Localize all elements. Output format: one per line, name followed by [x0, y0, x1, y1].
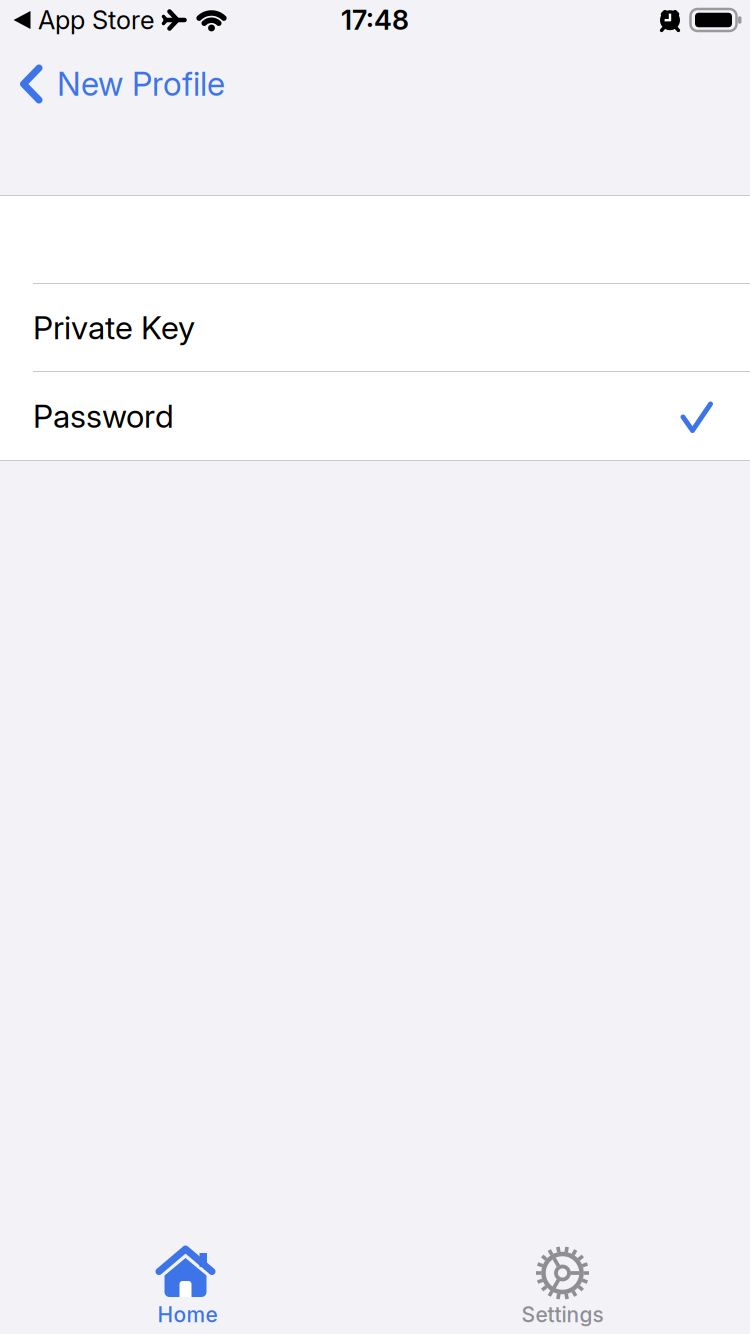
staticText: Private Key	[33, 308, 195, 347]
button[interactable]: Home	[0, 1236, 375, 1327]
staticText: Settings	[521, 1302, 603, 1327]
button[interactable]: New Profile	[0, 64, 225, 104]
staticText: Home	[157, 1302, 217, 1327]
staticText: 17:48	[341, 4, 409, 36]
button[interactable]: Password	[0, 372, 750, 460]
staticText: App Store	[38, 5, 155, 35]
button[interactable]: Settings	[375, 1236, 750, 1327]
button[interactable]: Private Key	[0, 284, 750, 371]
staticText: Password	[33, 397, 174, 435]
staticText: New Profile	[57, 64, 225, 104]
